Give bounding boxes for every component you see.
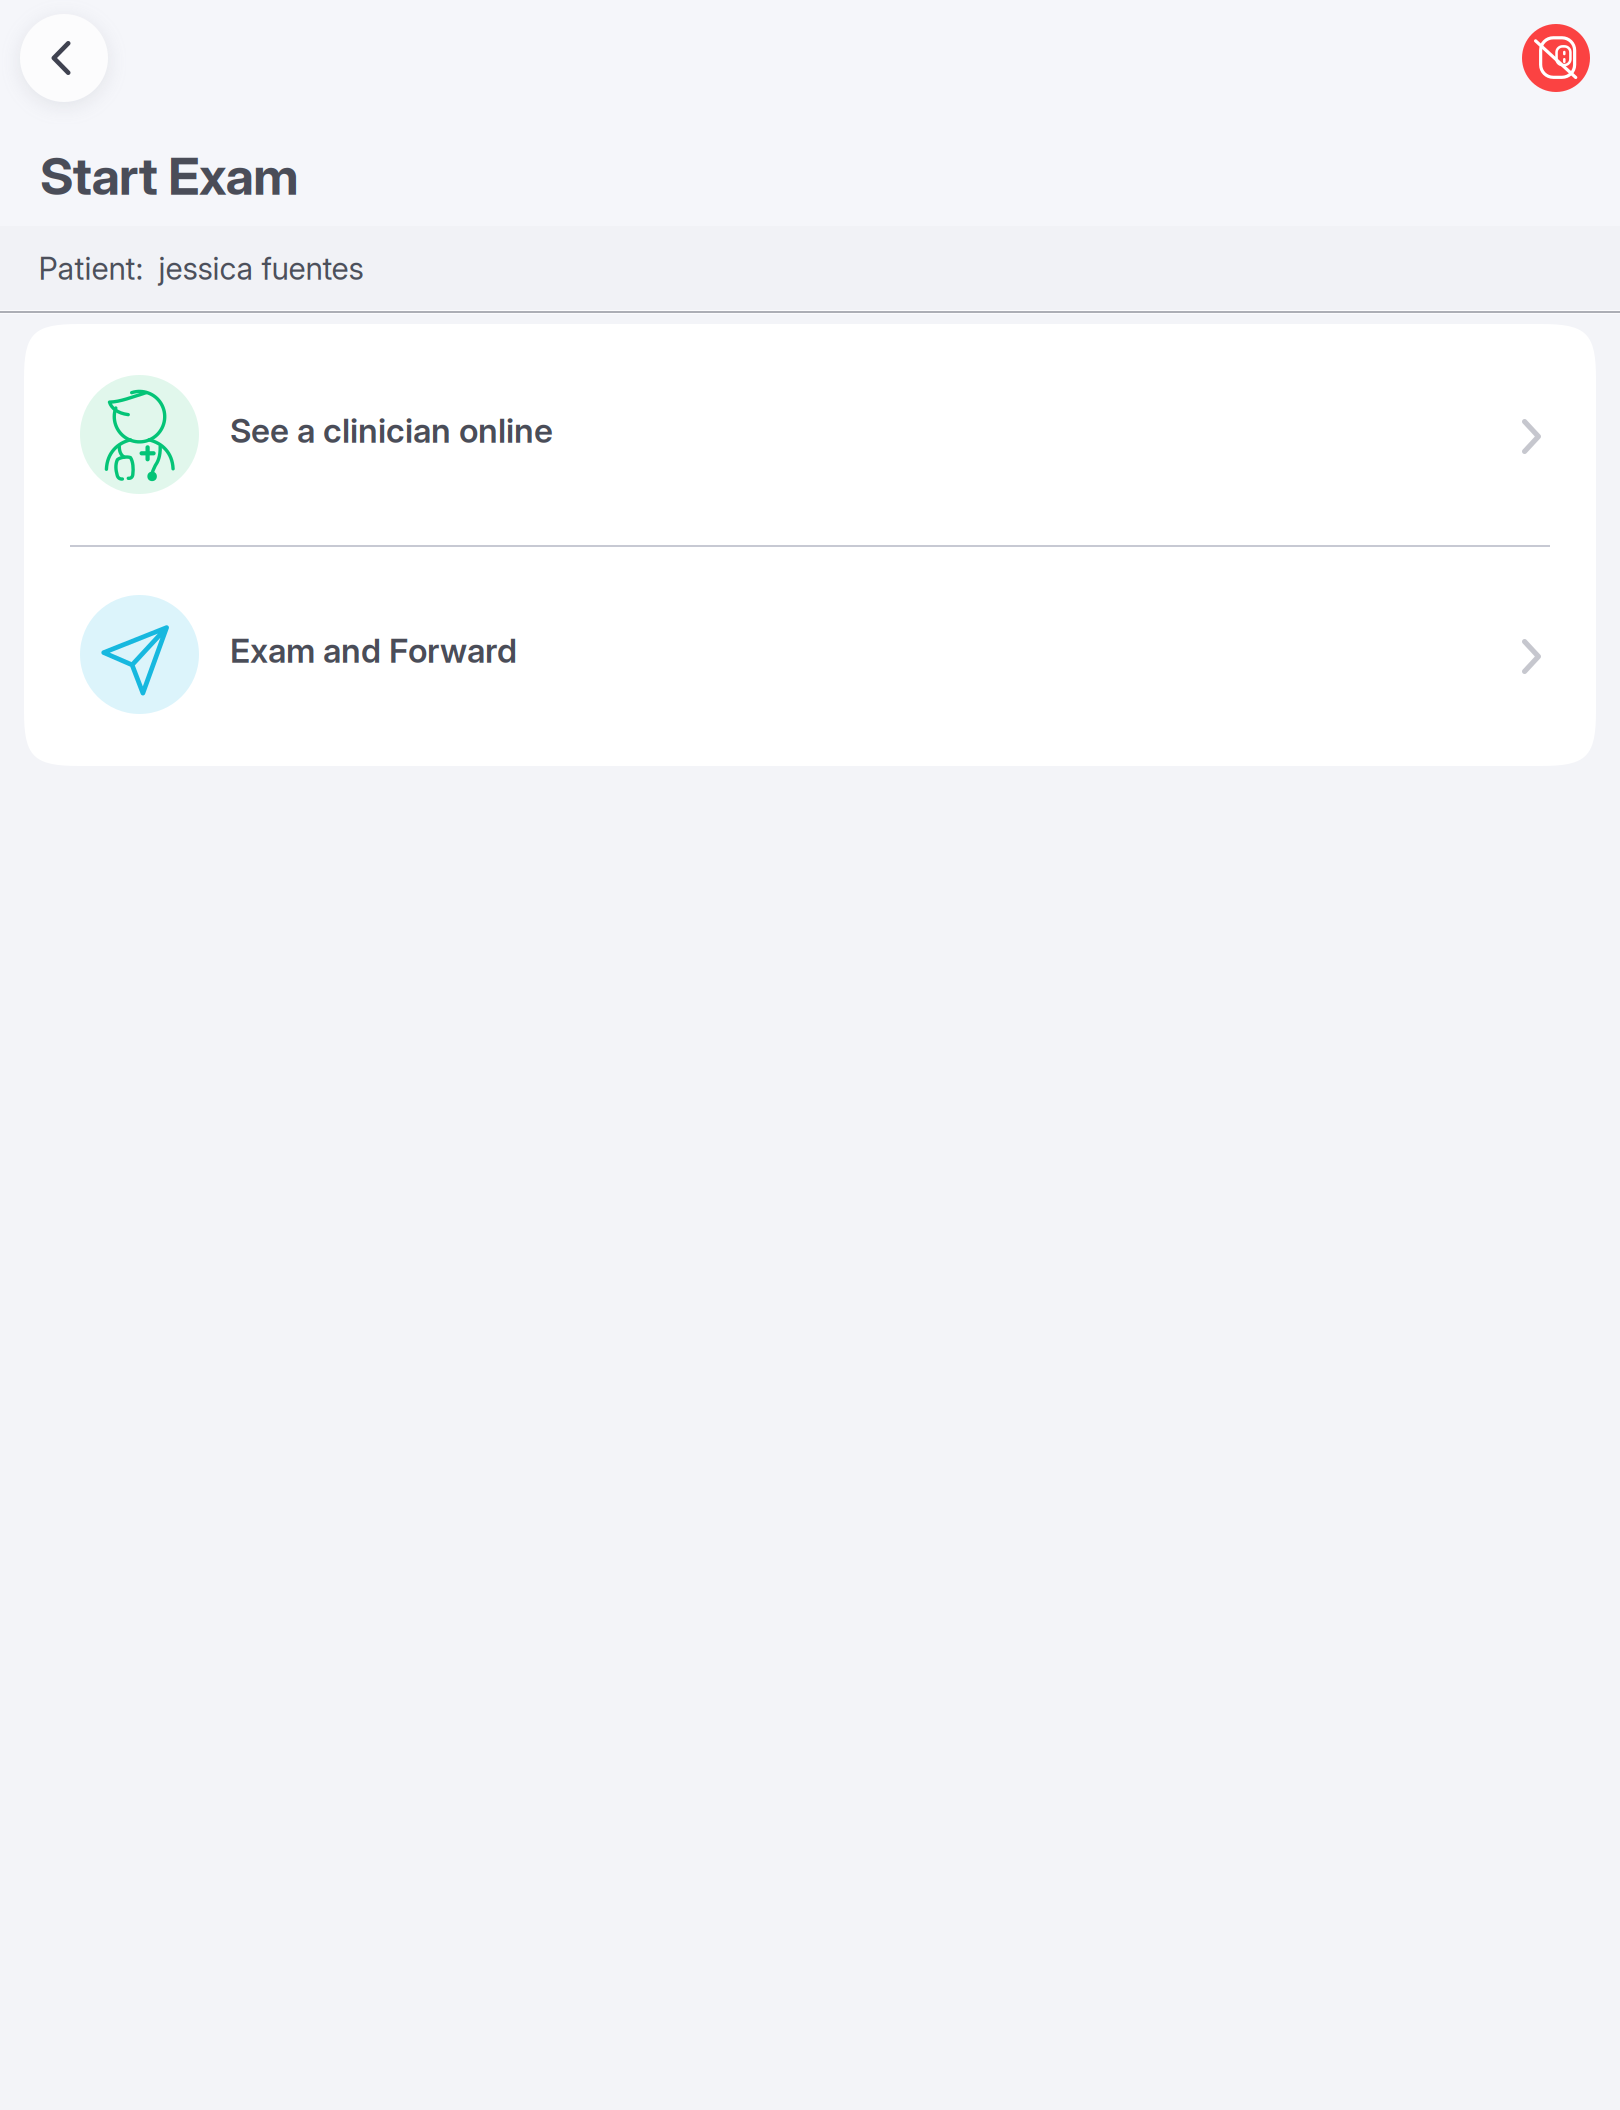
button[interactable]: Device disconnected — [1522, 24, 1590, 92]
button[interactable]: Exam and Forward — [24, 547, 1596, 766]
staticText: jessica fuentes — [158, 250, 363, 287]
staticText: Start Exam — [40, 145, 298, 207]
staticText: Patient: — [38, 250, 143, 287]
staticText: See a clinician online — [230, 410, 553, 451]
button[interactable]: Back — [20, 14, 108, 102]
staticText: Exam and Forward — [230, 630, 517, 671]
button[interactable]: See a clinician online — [24, 324, 1596, 545]
